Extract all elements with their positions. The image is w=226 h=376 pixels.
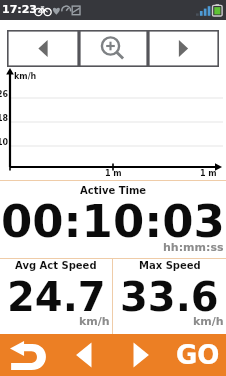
button[interactable]: Max Speed — [113, 259, 226, 334]
staticText: Active Time — [80, 185, 147, 197]
button[interactable]: Zoom in — [79, 30, 148, 67]
staticText: 1 m — [105, 169, 122, 178]
staticText: 17:23 — [2, 3, 38, 16]
staticText: 1 m — [200, 169, 217, 178]
staticText: 00:10:03 — [1, 195, 225, 247]
staticText: 10 — [0, 138, 9, 147]
staticText: 18 — [0, 114, 9, 123]
staticText: Max Speed — [139, 260, 201, 272]
staticText: hh:mm:ss — [163, 241, 224, 254]
button[interactable]: Back — [0, 334, 56, 376]
button[interactable]: Previous page — [7, 30, 79, 67]
staticText: Avg Act Speed — [15, 260, 97, 272]
staticText: km/h — [193, 315, 224, 328]
button[interactable]: GO — [169, 334, 226, 376]
button[interactable]: Avg Act Speed — [0, 259, 112, 334]
staticText: km/h — [14, 72, 37, 81]
staticText: GO — [176, 340, 220, 370]
staticText: 33.6 — [120, 274, 219, 321]
staticText: 26 — [0, 90, 9, 99]
button[interactable]: Next page — [148, 30, 219, 67]
button[interactable]: Previous — [56, 334, 112, 376]
staticText: km/h — [79, 315, 110, 328]
staticText: 24.7 — [7, 274, 106, 321]
button[interactable]: Next — [112, 334, 169, 376]
